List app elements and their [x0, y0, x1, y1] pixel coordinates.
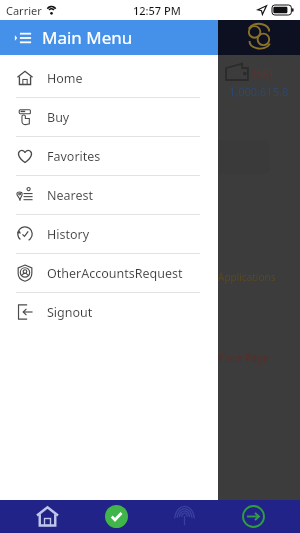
other: Close menu: [14, 29, 32, 47]
staticText: History: [47, 226, 90, 243]
button[interactable]: Exit: [231, 500, 275, 533]
staticText: Home: [47, 70, 83, 87]
button[interactable]: Favorites: [0, 137, 218, 175]
staticText: Buy: [47, 109, 70, 126]
button[interactable]: Buy: [0, 98, 218, 136]
button[interactable]: Home: [0, 59, 218, 97]
staticText: OtherAccountsRequest: [47, 265, 183, 282]
button[interactable]: Signout: [0, 293, 218, 331]
button[interactable]: History: [0, 215, 218, 253]
staticText: Signout: [47, 304, 93, 321]
staticText: Place Page: [218, 351, 269, 365]
staticText: Carrier: [6, 3, 42, 18]
button[interactable]: Nearest: [0, 176, 218, 214]
button[interactable]: Fingerprint: [162, 500, 206, 533]
staticText: 1,000,615.8: [229, 84, 289, 99]
staticText: Applications: [218, 270, 276, 284]
staticText: (SR): [253, 65, 273, 80]
staticText: 12:57 PM: [133, 3, 181, 18]
button[interactable]: Home: [25, 500, 69, 533]
staticText: Main Menu: [42, 26, 133, 49]
button[interactable]: Close menu: [0, 20, 218, 55]
button[interactable]: OtherAccountsRequest: [0, 254, 218, 292]
staticText: Nearest: [47, 187, 94, 204]
button[interactable]: Confirm: [94, 500, 138, 533]
staticText: Favorites: [47, 148, 101, 165]
